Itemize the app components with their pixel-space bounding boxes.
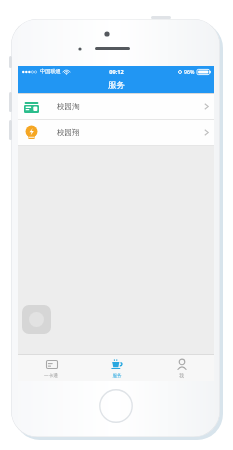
staticText: 校园淘: [57, 102, 80, 111]
button[interactable]: 校园翔: [18, 120, 214, 145]
staticText: 09:12: [109, 68, 124, 76]
staticText: 校园翔: [57, 128, 80, 137]
staticText: 96%: [184, 68, 195, 75]
button[interactable]: Services: [84, 355, 149, 381]
button[interactable]: Profile: [149, 355, 214, 381]
button[interactable]: 校园淘: [18, 94, 214, 119]
staticText: 我: [179, 373, 184, 379]
button[interactable]: Floating action: [22, 305, 51, 334]
staticText: 一卡通: [44, 373, 58, 379]
staticText: 中国联通: [40, 68, 61, 75]
staticText: 服务: [112, 373, 122, 379]
button[interactable]: Card: [18, 355, 84, 381]
staticText: 服务: [108, 80, 125, 91]
